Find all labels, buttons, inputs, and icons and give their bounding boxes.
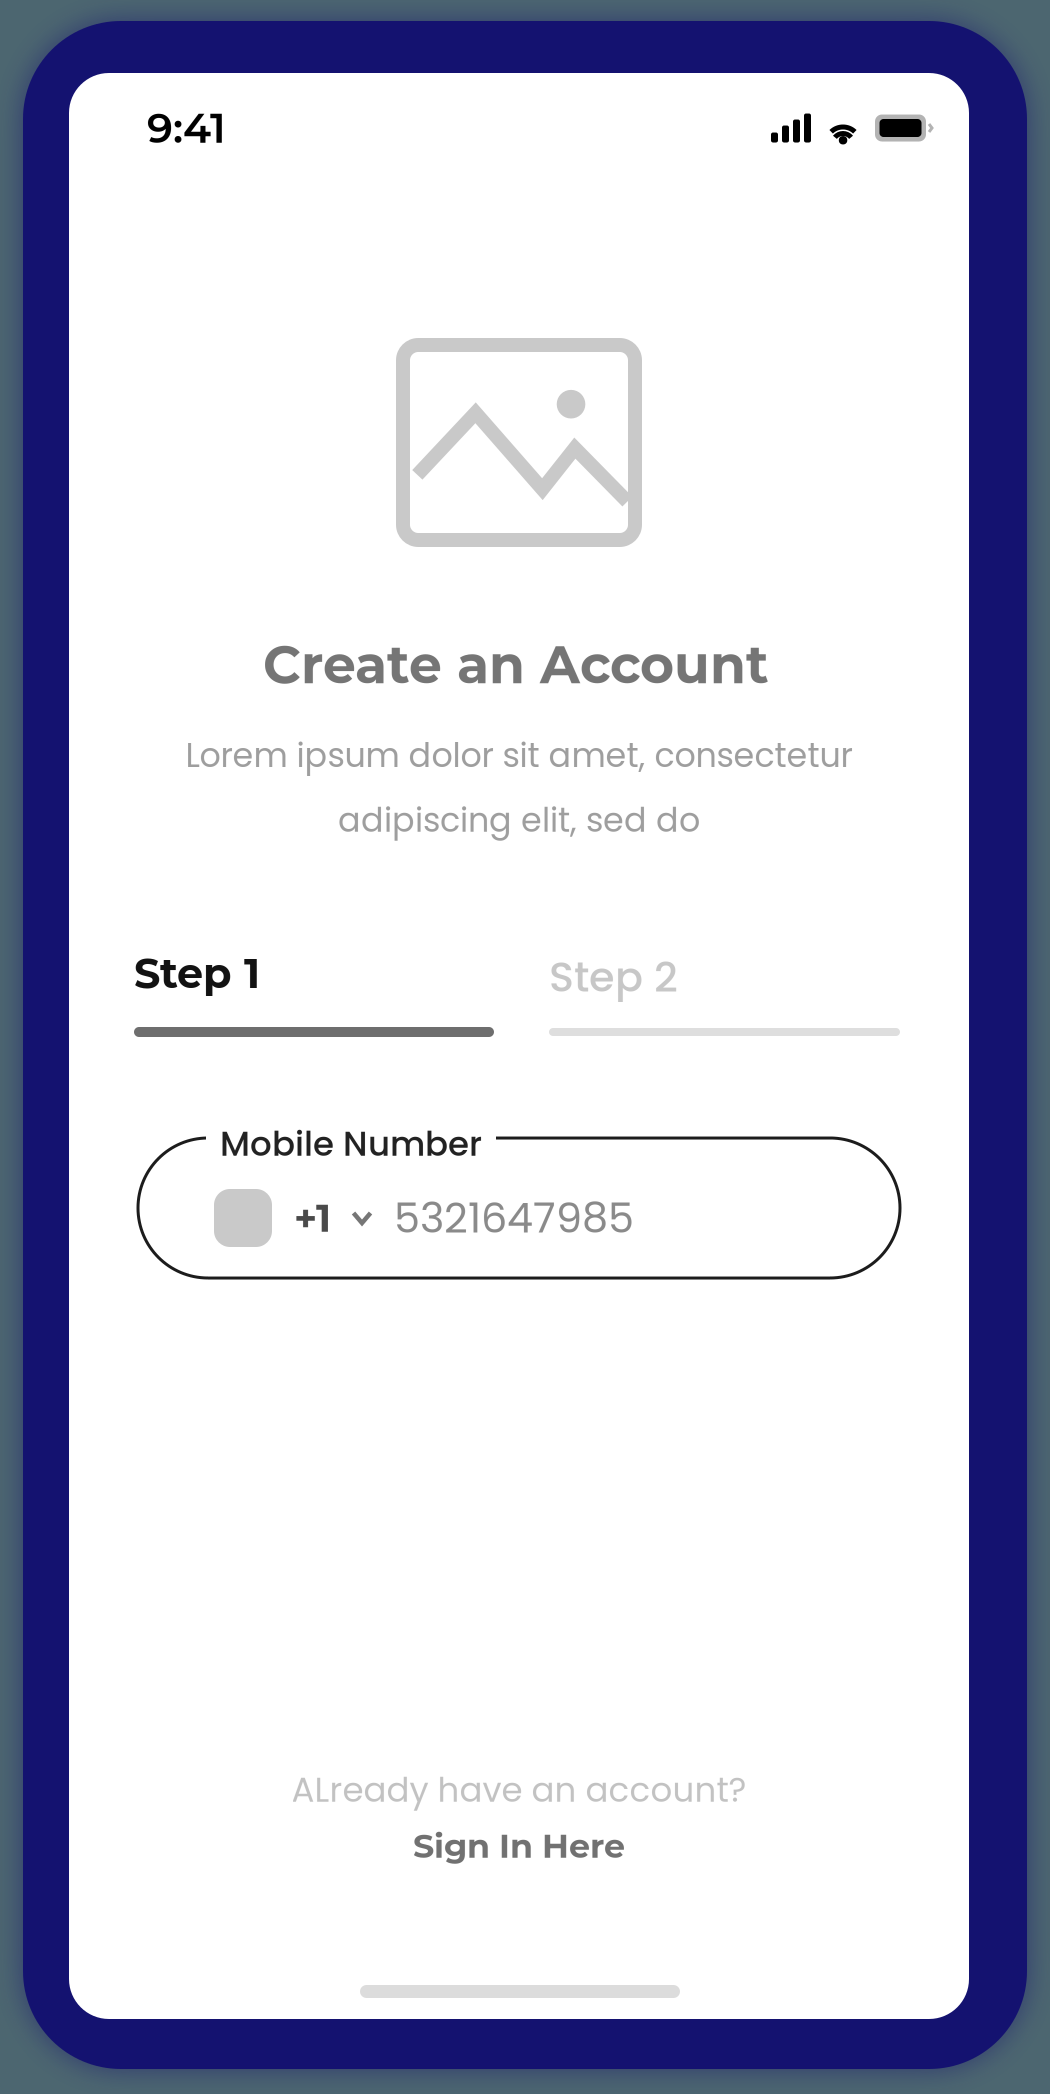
staticText: ALready have an account? bbox=[291, 1766, 746, 1814]
staticText: adipiscing elit, sed do bbox=[338, 797, 700, 843]
staticText: Lorem ipsum dolor sit amet, consectetur bbox=[185, 732, 852, 779]
staticText: 9:41 bbox=[147, 103, 226, 153]
button[interactable]: Step 2 bbox=[549, 948, 900, 1048]
staticText: Mobile Number bbox=[220, 1120, 482, 1168]
staticText: +1 bbox=[294, 1194, 331, 1241]
staticText: Step 1 bbox=[134, 948, 260, 998]
staticText: Sign In Here bbox=[413, 1826, 625, 1866]
staticText: Step 2 bbox=[549, 948, 678, 1006]
staticText: 5321647985 bbox=[394, 1189, 634, 1247]
staticText: Create an Account bbox=[263, 633, 769, 696]
button[interactable]: ALready have an account? bbox=[69, 1766, 969, 1866]
button[interactable]: Step 1 bbox=[134, 948, 494, 1048]
